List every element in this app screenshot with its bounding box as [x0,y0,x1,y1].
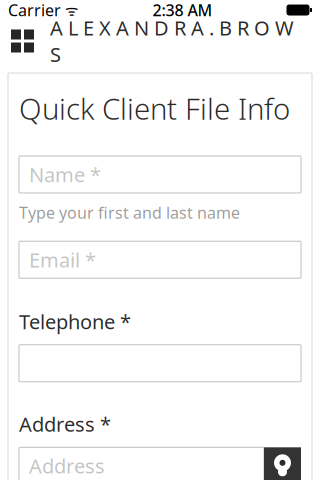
staticText: Type your first and last name [19,202,240,223]
button[interactable]: Name * [19,156,301,193]
staticText: A L E X A N D R A . B R O W S [50,14,294,67]
staticText: ᯤ [61,0,78,20]
staticText: Address [29,452,105,479]
button[interactable] [19,345,301,382]
button[interactable]: Email * [19,241,301,278]
staticText: Quick Client File Info [19,89,290,128]
button[interactable]: Use current location [264,447,301,480]
staticText: Name * [29,161,101,188]
staticText: Telephone * [19,308,131,335]
staticText: 2:38 AM [152,0,212,21]
staticText: Address * [19,411,111,437]
staticText: Email * [29,246,96,273]
staticText: Carrier [8,0,61,21]
